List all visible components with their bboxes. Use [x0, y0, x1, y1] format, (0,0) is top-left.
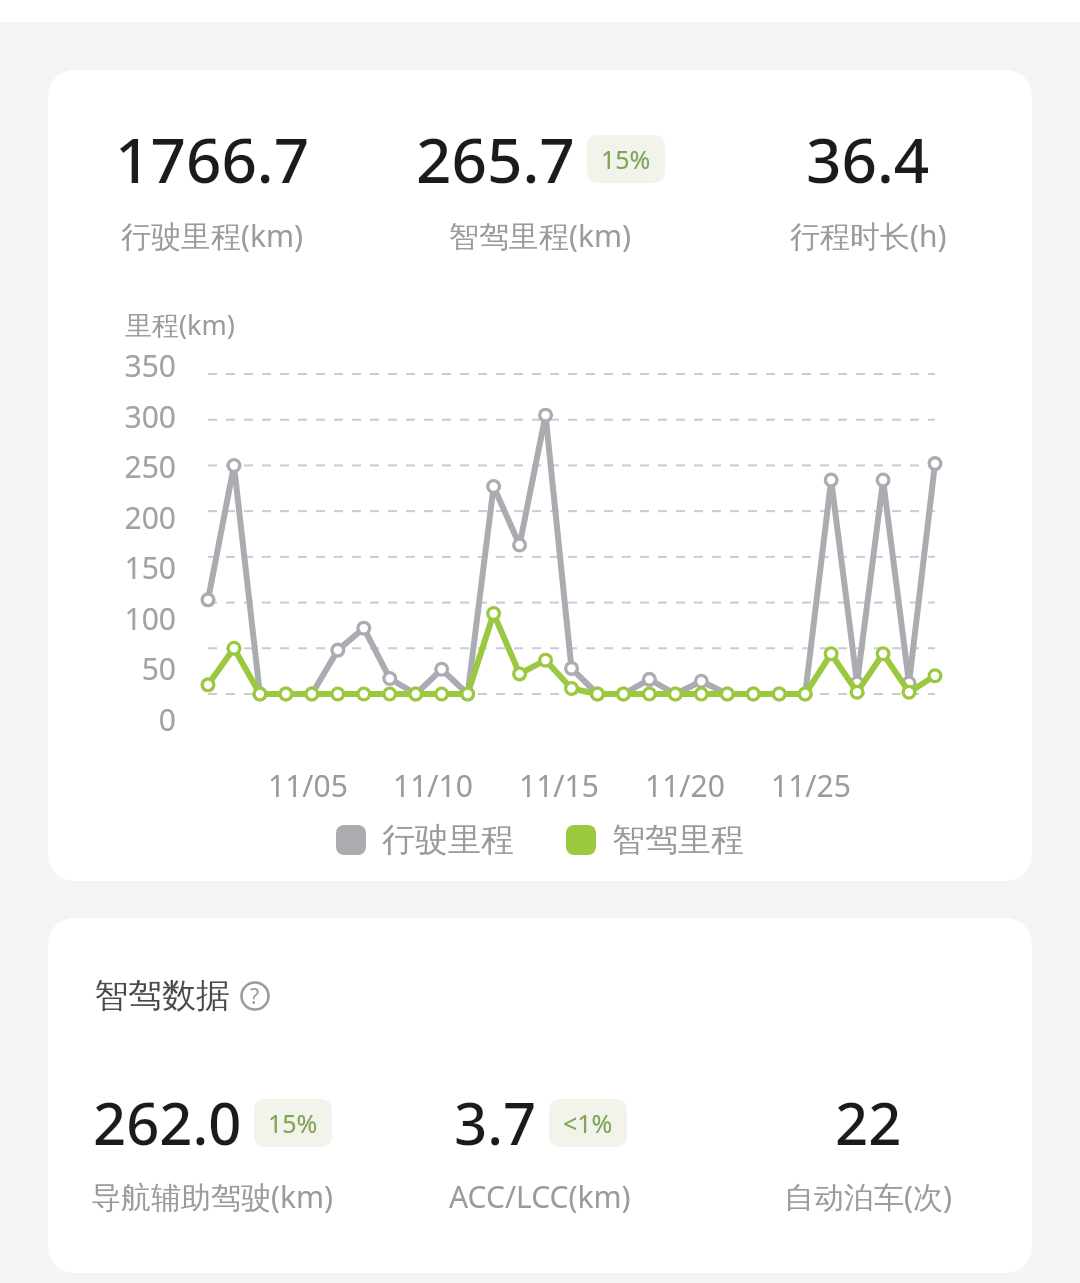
staticText: 11/15 [519, 765, 599, 806]
staticText: 行程时长(h) [790, 215, 947, 256]
staticText: 300 [124, 396, 176, 437]
staticText: 100 [124, 598, 176, 639]
staticText: 导航辅助驾驶(km) [91, 1176, 334, 1217]
staticText: 0 [158, 699, 176, 740]
staticText: 150 [124, 547, 176, 588]
staticText: 200 [124, 497, 176, 538]
staticText: 50 [141, 648, 176, 689]
button[interactable]: 行驶里程 [336, 819, 514, 861]
staticText: 15% [601, 142, 651, 176]
staticText: 250 [124, 446, 176, 487]
other: Help about 智驾数据 [240, 981, 270, 1011]
staticText: 智驾数据 [94, 974, 230, 1017]
staticText: 行驶里程(km) [121, 215, 304, 256]
staticText: 里程(km) [125, 306, 235, 343]
staticText: 262.0 [93, 1083, 242, 1162]
button[interactable]: 1766.7 [48, 70, 1032, 881]
button[interactable]: 22 [704, 1083, 1032, 1217]
staticText: 3.7 [454, 1083, 537, 1162]
staticText: 智驾里程 [612, 819, 744, 861]
staticText: <1% [563, 1106, 613, 1140]
staticText: 行驶里程 [382, 819, 514, 861]
staticText: ? [250, 982, 260, 1011]
staticText: 265.7 [416, 117, 575, 201]
staticText: 22 [835, 1083, 902, 1162]
button[interactable]: 智驾数据 [94, 974, 270, 1017]
staticText: 1766.7 [115, 117, 310, 201]
staticText: 11/05 [268, 765, 348, 806]
button[interactable]: 36.4 [704, 117, 1032, 256]
button[interactable]: 智驾里程 [566, 819, 744, 861]
staticText: 11/20 [645, 765, 725, 806]
button[interactable]: 3.7 [376, 1083, 704, 1217]
staticText: 自动泊车(次) [784, 1176, 952, 1217]
staticText: 15% [268, 1106, 318, 1140]
button[interactable]: 262.0 [48, 1083, 376, 1217]
staticText: 11/25 [771, 765, 851, 806]
button[interactable]: 1766.7 [48, 117, 376, 256]
button[interactable]: 智驾数据 [48, 918, 1032, 1273]
staticText: 智驾里程(km) [449, 215, 632, 256]
staticText: 36.4 [806, 117, 930, 201]
staticText: 350 [124, 345, 176, 386]
staticText: ACC/LCC(km) [449, 1176, 631, 1217]
staticText: 11/10 [393, 765, 473, 806]
button[interactable]: 265.7 [376, 117, 704, 256]
